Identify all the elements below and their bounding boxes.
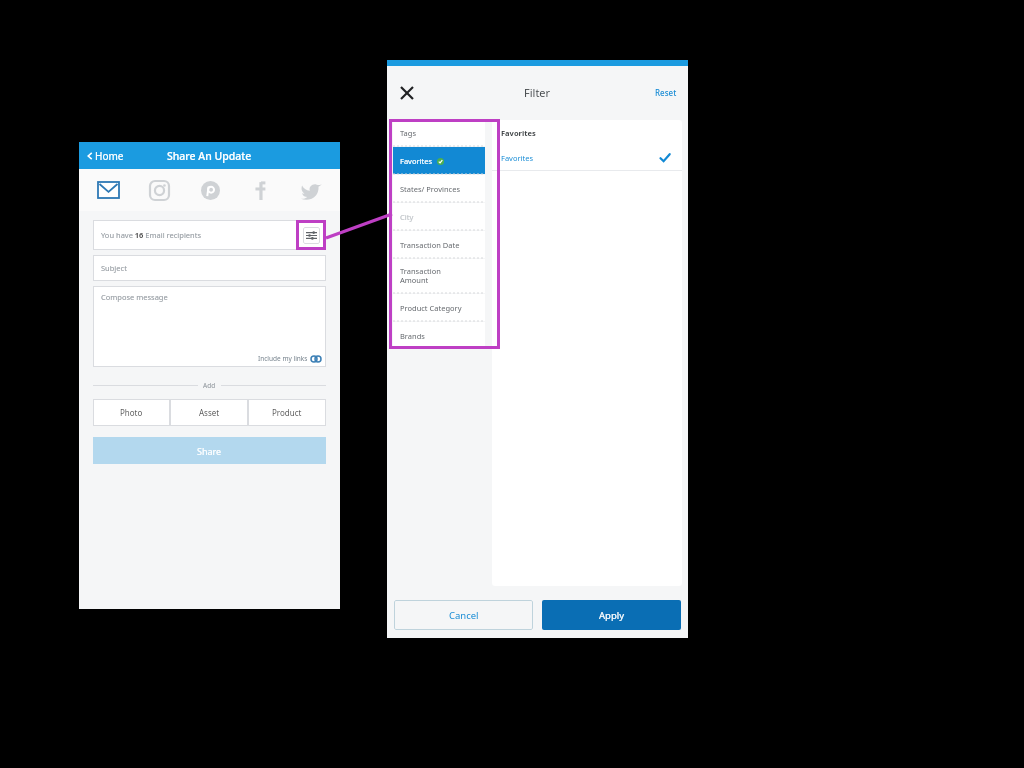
button[interactable]: Home [86, 149, 124, 163]
button[interactable]: City [393, 203, 485, 230]
button[interactable]: Asset [170, 399, 248, 426]
button[interactable]: Close [396, 82, 418, 104]
staticText: Cancel [449, 609, 479, 622]
staticText: Compose message [101, 292, 168, 302]
staticText: Brands [400, 331, 425, 341]
button[interactable]: Compose message [93, 286, 326, 367]
button[interactable]: Photo [93, 399, 170, 426]
button[interactable]: Twitter [296, 175, 326, 205]
button[interactable]: Cancel [394, 600, 533, 630]
button[interactable]: Transaction Date [393, 231, 485, 258]
button[interactable]: Favorites [393, 147, 485, 174]
button[interactable]: Reset [652, 84, 680, 101]
staticText: Favorites [501, 153, 534, 163]
button[interactable]: Include my links [258, 354, 321, 363]
button[interactable]: Apply [542, 600, 681, 630]
staticText: Filter [524, 85, 551, 100]
button[interactable]: Pinterest [195, 175, 225, 205]
staticText: Share An Update [167, 149, 252, 163]
staticText: Tags [400, 128, 416, 138]
staticText: Photo [120, 407, 143, 418]
button[interactable]: You have 16 Email recipients [93, 220, 326, 250]
staticText: Favorites [501, 128, 536, 138]
button[interactable]: Brands [393, 322, 485, 349]
staticText: States/ Provinces [400, 184, 460, 194]
staticText: Subject [101, 263, 127, 273]
button[interactable]: Transaction Amount [393, 259, 485, 293]
button[interactable]: Email [93, 175, 123, 205]
button[interactable]: Product Category [393, 294, 485, 321]
button[interactable]: States/ Provinces [393, 175, 485, 202]
staticText: Product [272, 407, 302, 418]
staticText: Reset [655, 87, 677, 98]
button[interactable]: Filter recipients [296, 220, 326, 250]
staticText: You have 16 Email recipients [101, 230, 201, 240]
staticText: Home [95, 149, 124, 163]
staticText: Apply [599, 609, 625, 622]
button[interactable]: Instagram [144, 175, 174, 205]
button[interactable]: Share [93, 437, 326, 464]
staticText: Asset [199, 407, 220, 418]
button[interactable]: Product [248, 399, 326, 426]
staticText: Transaction Amount [400, 266, 441, 286]
button[interactable]: Tags [393, 119, 485, 146]
staticText: Share [197, 445, 222, 457]
staticText: Include my links [258, 354, 308, 363]
staticText: City [400, 212, 414, 222]
button[interactable]: Favorites [492, 145, 682, 170]
button[interactable]: Subject [93, 255, 326, 281]
staticText: Transaction Date [400, 240, 460, 250]
button[interactable]: Facebook [245, 175, 275, 205]
staticText: Add [203, 381, 216, 390]
staticText: Product Category [400, 303, 462, 313]
staticText: Favorites [400, 156, 433, 166]
